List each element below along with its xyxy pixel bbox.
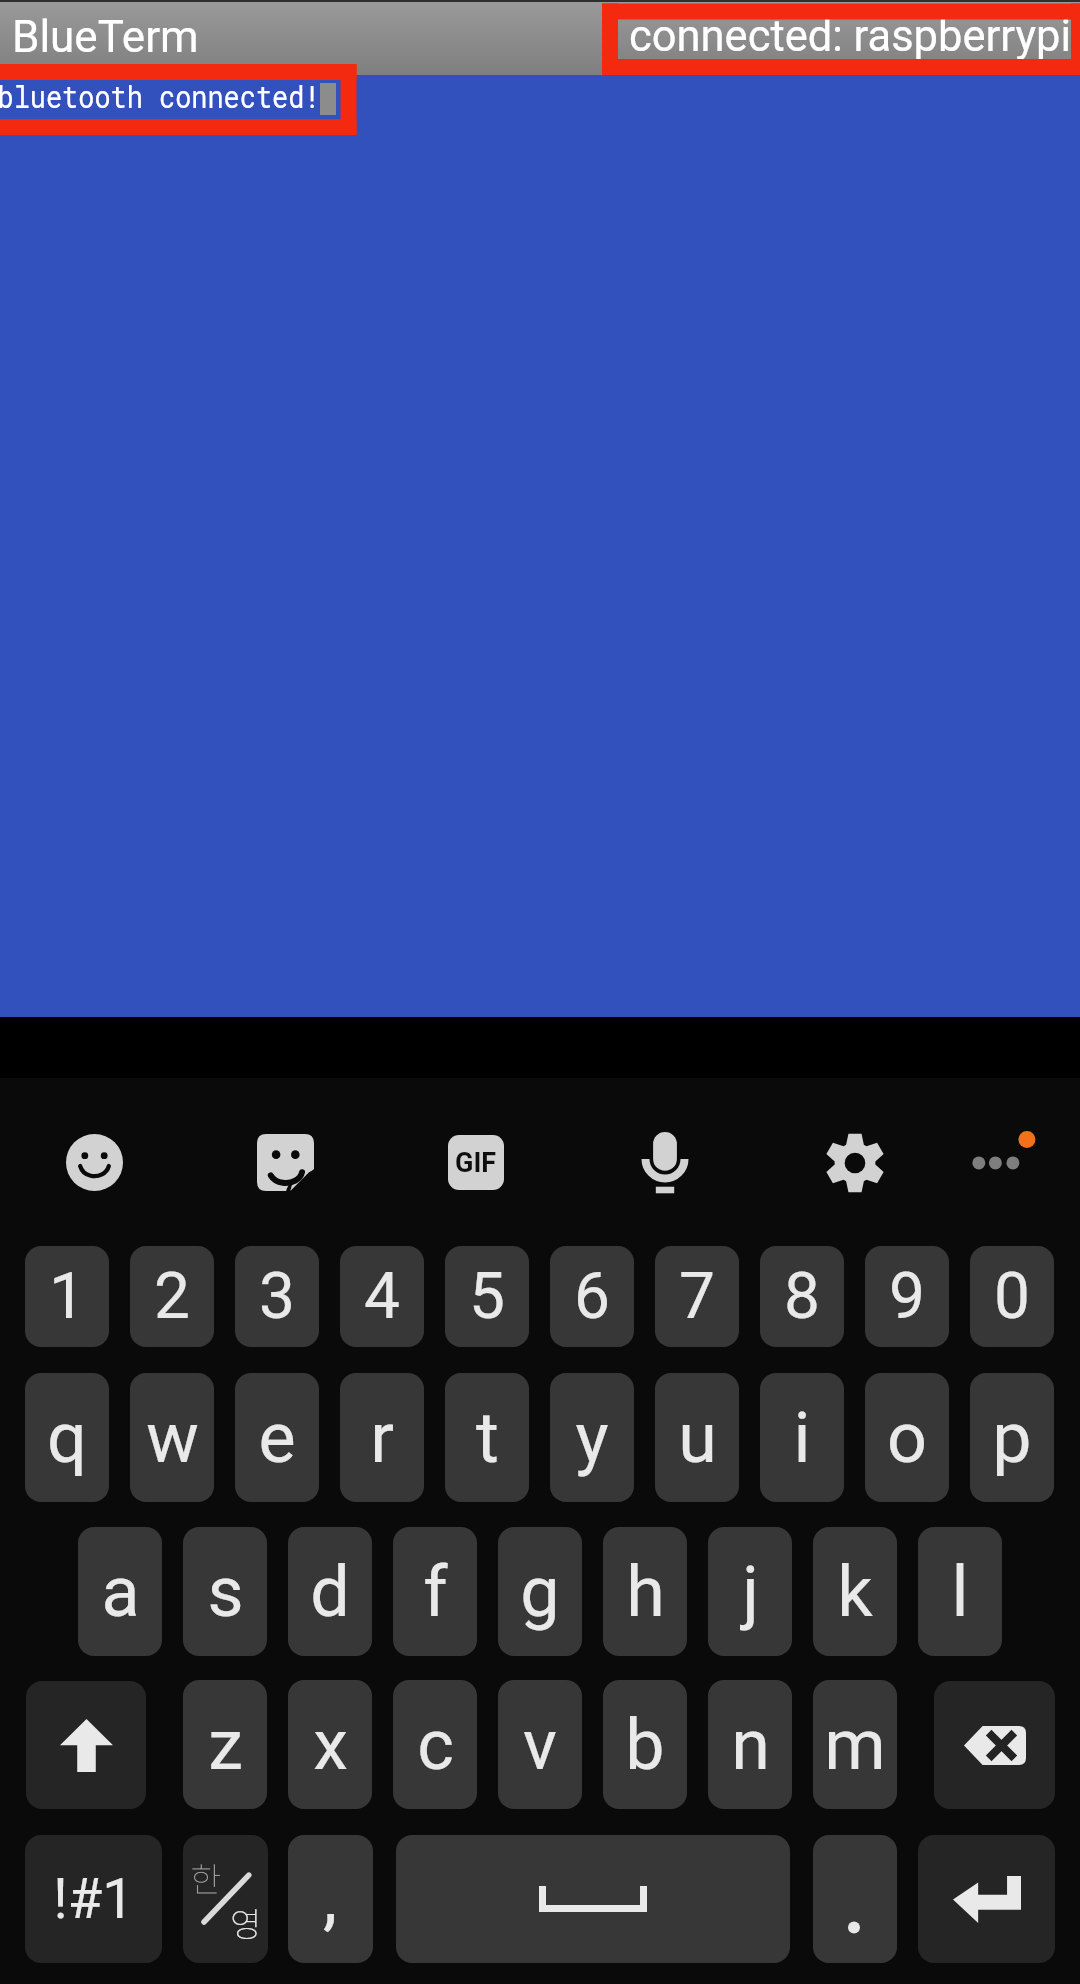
staticText: m	[824, 1704, 886, 1786]
staticText: GIF	[455, 1147, 497, 1179]
staticText: q	[47, 1397, 87, 1479]
button[interactable]: j	[708, 1527, 792, 1656]
button[interactable]: 3	[235, 1246, 319, 1347]
button[interactable]: g	[498, 1527, 582, 1656]
staticText: z	[208, 1704, 243, 1786]
button[interactable]: 7	[655, 1246, 739, 1347]
button[interactable]	[0, 0, 1080, 75]
button[interactable]: Enter	[918, 1835, 1055, 1963]
staticText: a	[101, 1551, 140, 1633]
staticText: p	[992, 1397, 1032, 1479]
staticText: o	[887, 1397, 927, 1479]
staticText: l	[951, 1551, 969, 1633]
staticText: k	[837, 1551, 873, 1633]
button[interactable]: u	[655, 1373, 739, 1502]
staticText: 7	[679, 1259, 715, 1334]
button[interactable]: i	[760, 1373, 844, 1502]
button[interactable]: z	[183, 1680, 267, 1809]
staticText: x	[313, 1704, 348, 1786]
button[interactable]: Period	[813, 1835, 897, 1963]
button[interactable]: d	[288, 1527, 372, 1656]
button[interactable]: 9	[865, 1246, 949, 1347]
staticText: d	[310, 1551, 350, 1633]
staticText: n	[731, 1704, 770, 1786]
button[interactable]: Space	[396, 1835, 790, 1963]
staticText: i	[793, 1397, 811, 1479]
button[interactable]: n	[708, 1680, 792, 1809]
staticText: j	[742, 1551, 759, 1633]
button[interactable]: Settings	[826, 1133, 884, 1193]
button[interactable]: Backspace	[934, 1681, 1055, 1809]
staticText: 9	[889, 1259, 925, 1334]
staticText: h	[626, 1551, 665, 1633]
button[interactable]: !#1	[25, 1835, 162, 1963]
button[interactable]: m	[813, 1680, 897, 1809]
button[interactable]: GIF	[448, 1135, 504, 1190]
button[interactable]: r	[340, 1373, 424, 1502]
button[interactable]: Emoji	[66, 1134, 123, 1191]
button[interactable]: b	[603, 1680, 687, 1809]
staticText: r	[370, 1397, 394, 1479]
staticText: ,	[323, 1855, 338, 1939]
button[interactable]: p	[970, 1373, 1054, 1502]
staticText: !#1	[53, 1866, 134, 1932]
button[interactable]: k	[813, 1527, 897, 1656]
staticText: v	[523, 1704, 557, 1786]
button[interactable]: h	[603, 1527, 687, 1656]
button[interactable]: 1	[25, 1246, 109, 1347]
button[interactable]: Stickers	[257, 1134, 314, 1191]
button[interactable]: c	[393, 1680, 477, 1809]
staticText: 8	[784, 1259, 820, 1334]
button[interactable]: s	[183, 1527, 267, 1656]
button[interactable]: 4	[340, 1246, 424, 1347]
staticText: w	[146, 1397, 199, 1479]
staticText: 영	[230, 1898, 262, 1947]
button[interactable]: Shift	[26, 1681, 146, 1809]
staticText: y	[575, 1397, 609, 1479]
staticText: 0	[994, 1259, 1030, 1334]
button[interactable]: 8	[760, 1246, 844, 1347]
button[interactable]: 2	[130, 1246, 214, 1347]
staticText: t	[476, 1397, 499, 1479]
button[interactable]: q	[25, 1373, 109, 1502]
staticText: g	[520, 1551, 560, 1633]
staticText: c	[417, 1704, 454, 1786]
button[interactable]: t	[445, 1373, 529, 1502]
staticText: u	[678, 1397, 717, 1479]
button[interactable]: 6	[550, 1246, 634, 1347]
button[interactable]: l	[918, 1527, 1002, 1656]
staticText: e	[258, 1397, 296, 1479]
button[interactable]: v	[498, 1680, 582, 1809]
staticText: bluetooth connected!	[0, 74, 321, 116]
staticText: BlueTerm	[12, 11, 199, 63]
button[interactable]: Voice input	[637, 1128, 693, 1200]
button[interactable]: x	[288, 1680, 372, 1809]
button[interactable]: a	[78, 1527, 162, 1656]
button[interactable]: o	[865, 1373, 949, 1502]
button[interactable]: 0	[970, 1246, 1054, 1347]
staticText: 4	[364, 1259, 400, 1334]
button[interactable]: Korean / English	[183, 1835, 268, 1963]
staticText: 한	[190, 1853, 222, 1902]
staticText: 5	[469, 1259, 505, 1334]
staticText: f	[423, 1551, 448, 1633]
button[interactable]: y	[550, 1373, 634, 1502]
staticText: 2	[154, 1259, 190, 1334]
staticText: b	[625, 1704, 665, 1786]
staticText: connected: raspberrypi	[629, 11, 1080, 62]
button[interactable]: e	[235, 1373, 319, 1502]
button[interactable]: 5	[445, 1246, 529, 1347]
button[interactable]: Comma	[288, 1835, 373, 1963]
button[interactable]: More options	[955, 1126, 1045, 1198]
staticText: 1	[49, 1259, 85, 1334]
staticText: 3	[259, 1259, 295, 1334]
button[interactable]: f	[393, 1527, 477, 1656]
staticText: s	[207, 1551, 244, 1633]
button[interactable]: w	[130, 1373, 214, 1502]
staticText: 6	[574, 1259, 610, 1334]
